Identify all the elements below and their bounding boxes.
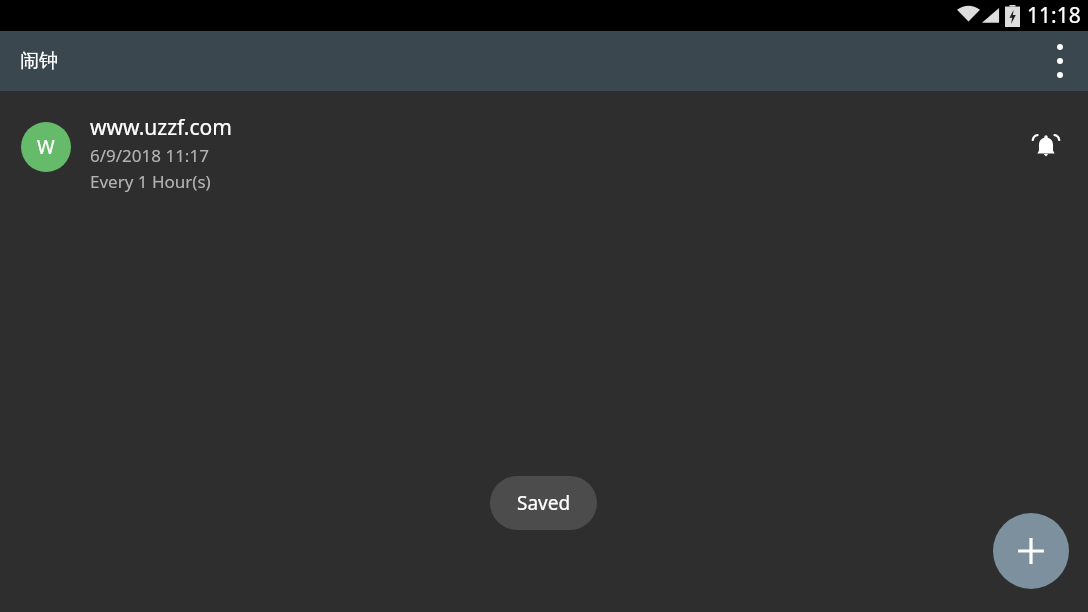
button[interactable]: Add alarm <box>993 513 1069 589</box>
staticText: W <box>37 134 55 160</box>
staticText: www.uzzf.com <box>90 113 232 142</box>
button[interactable]: More options <box>1032 31 1088 91</box>
button[interactable]: Alarm enabled <box>1021 122 1071 172</box>
staticText: 6/9/2018 11:17 <box>90 144 209 167</box>
staticText: 11:18 <box>1027 1 1081 30</box>
button[interactable]: W <box>0 91 1088 201</box>
staticText: 闹钟 <box>20 49 58 73</box>
staticText: Saved <box>517 490 571 516</box>
staticText: Every 1 Hour(s) <box>90 170 211 193</box>
